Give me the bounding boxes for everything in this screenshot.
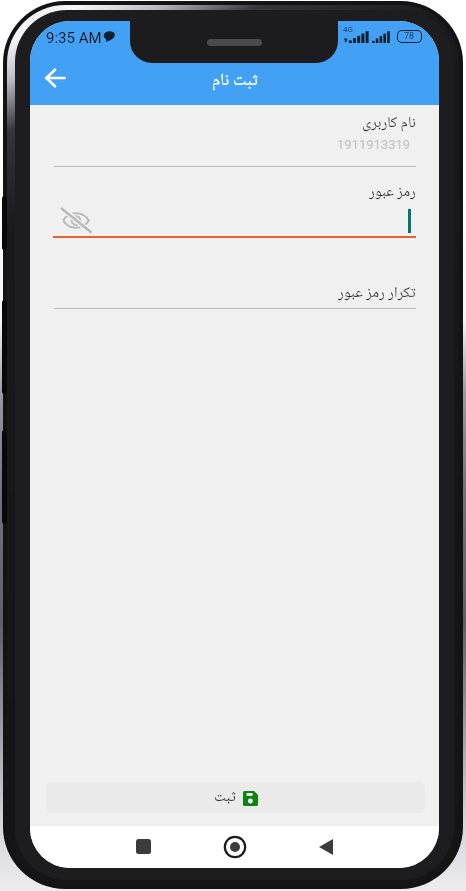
button[interactable]: Toggle password visibility — [54, 204, 98, 236]
button[interactable]: Home — [217, 829, 252, 864]
staticText: نام کاربری — [362, 111, 416, 137]
staticText: رمز عبور — [369, 180, 416, 206]
button[interactable]: Recents — [126, 829, 161, 864]
button[interactable]: ثبت — [46, 782, 425, 813]
button[interactable]: Back — [308, 829, 343, 864]
staticText: ثبت نام — [212, 67, 258, 96]
staticText: 4G — [343, 25, 353, 34]
staticText: 78 — [404, 31, 415, 42]
button[interactable]: Back — [33, 56, 77, 100]
staticText: تکرار رمز عبور — [338, 281, 416, 307]
staticText: 9:35 AM — [46, 29, 102, 47]
staticText: 1911913319 — [337, 137, 411, 152]
staticText: ثبت — [214, 785, 236, 811]
